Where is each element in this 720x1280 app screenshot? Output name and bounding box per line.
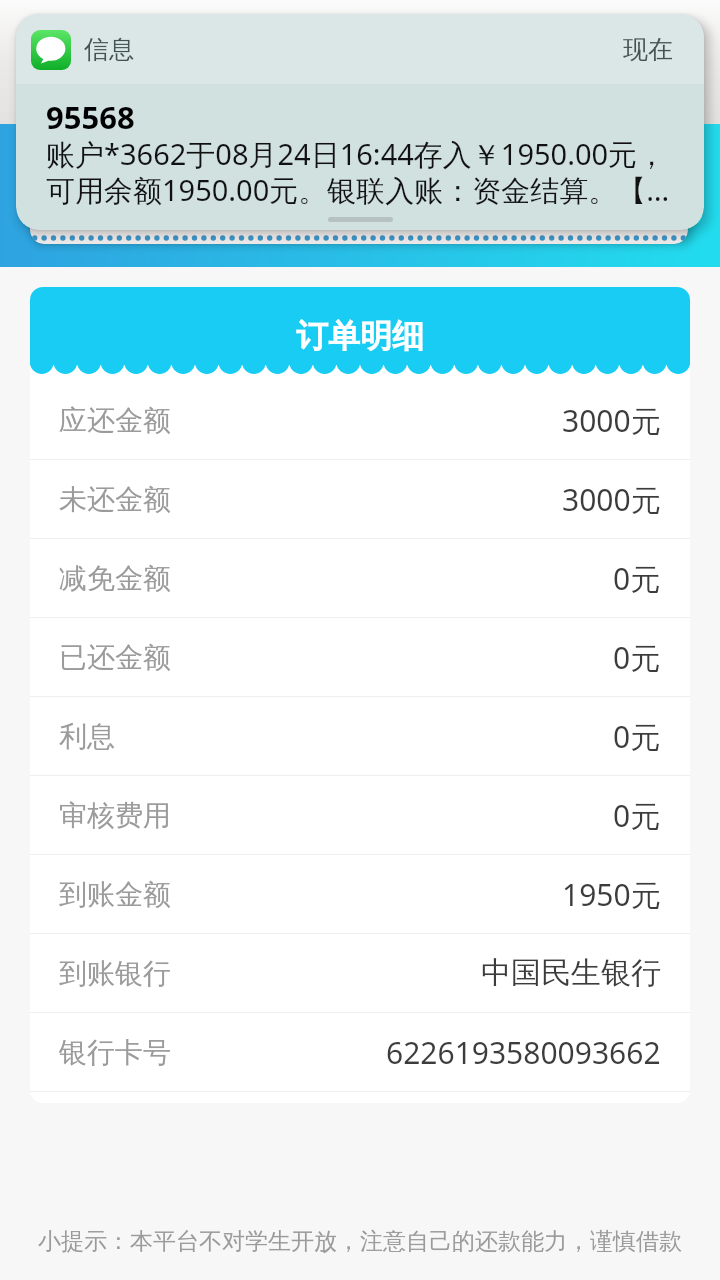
staticText: 利息 — [59, 719, 115, 754]
staticText: 95568 — [46, 96, 135, 138]
staticText: 中国民生银行 — [481, 954, 661, 992]
staticText: 已还金额 — [59, 640, 171, 675]
staticText: 小提示：本平台不对学生开放，注意自己的还款能力，谨慎借款 — [38, 1227, 682, 1256]
button[interactable]: 银行卡号 — [30, 1013, 690, 1091]
staticText: 应还金额 — [59, 403, 171, 438]
staticText: 可用余额1950.00元。银联入账：资金结算。【… — [46, 170, 670, 210]
staticText: 3000元 — [562, 479, 661, 520]
staticText: 未还金额 — [59, 482, 171, 517]
staticText: 银行卡号 — [59, 1035, 171, 1070]
staticText: 订单明细 — [30, 316, 690, 356]
staticText: 审核费用 — [59, 798, 171, 833]
button[interactable]: 到账金额 — [30, 855, 690, 933]
button[interactable]: 减免金额 — [30, 539, 690, 617]
button[interactable]: 未还金额 — [30, 460, 690, 538]
button[interactable]: 应还金额 — [30, 381, 690, 459]
staticText: 到账银行 — [59, 956, 171, 991]
staticText: 信息 — [84, 34, 134, 65]
staticText: 0元 — [613, 558, 661, 599]
staticText: 0元 — [613, 637, 661, 678]
staticText: 1950元 — [562, 874, 661, 915]
staticText: 账户*3662于08月24日16:44存入￥1950.00元， — [46, 134, 667, 174]
button[interactable]: Messages — [16, 14, 704, 230]
other: Messages — [31, 30, 71, 70]
staticText: 6226193580093662 — [386, 1032, 661, 1073]
button[interactable]: 利息 — [30, 697, 690, 775]
staticText: 减免金额 — [59, 561, 171, 596]
button[interactable]: 已还金额 — [30, 618, 690, 696]
staticText: 3000元 — [562, 400, 661, 441]
staticText: 现在 — [623, 34, 673, 65]
staticText: 0元 — [613, 795, 661, 836]
button[interactable]: 到账银行 — [30, 934, 690, 1012]
staticText: 0元 — [613, 716, 661, 757]
staticText: 到账金额 — [59, 877, 171, 912]
button[interactable]: 审核费用 — [30, 776, 690, 854]
